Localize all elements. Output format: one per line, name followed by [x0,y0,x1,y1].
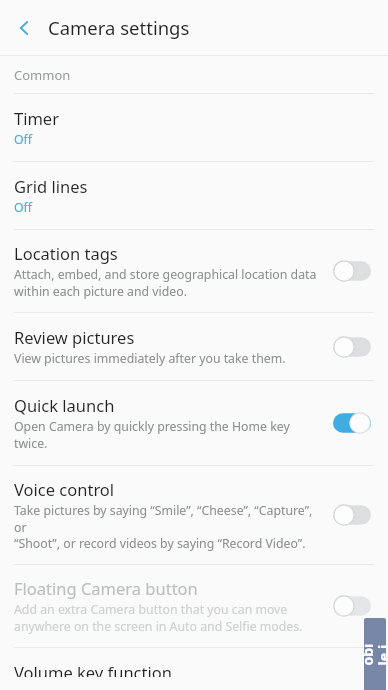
button[interactable]: Voice control [0,466,388,564]
button[interactable]: Off [326,253,378,289]
staticText: Off [14,131,33,148]
staticText: Floating Camera button [14,577,198,599]
staticText: Location tags [14,242,118,264]
staticText: Timer [14,107,59,129]
staticText: Grid lines [14,175,88,197]
button[interactable]: Location tags [0,230,388,312]
staticText: Voice control [14,478,115,500]
staticText: Take pictures by saying “Smile”, “Cheese… [14,502,320,552]
staticText: Add an extra Camera button that you can … [14,601,303,635]
staticText: Open Camera by quickly pressing the Home… [14,418,320,452]
button[interactable]: Off [326,329,378,365]
button[interactable]: On [326,405,378,441]
button[interactable]: Floating Camera button [0,565,388,647]
button[interactable]: Volume key function [0,648,388,690]
button[interactable]: Grid lines [0,162,388,229]
staticText: mobile.ir [364,643,386,665]
staticText: Quick launch [14,394,115,416]
staticText: Off [14,199,33,216]
button[interactable]: Off [326,497,378,533]
staticText: Volume key function [14,661,172,677]
staticText: Camera settings [48,15,190,40]
button[interactable]: Quick launch [0,381,388,465]
staticText: Common [14,66,71,84]
button[interactable]: Off [326,588,378,624]
staticText: View pictures immediately after you take… [14,350,286,367]
button[interactable]: Review pictures [0,313,388,380]
button[interactable]: Timer [0,94,388,161]
staticText: Review pictures [14,326,135,348]
staticText: Attach, embed, and store geographical lo… [14,266,317,300]
button[interactable]: Back [4,8,44,48]
